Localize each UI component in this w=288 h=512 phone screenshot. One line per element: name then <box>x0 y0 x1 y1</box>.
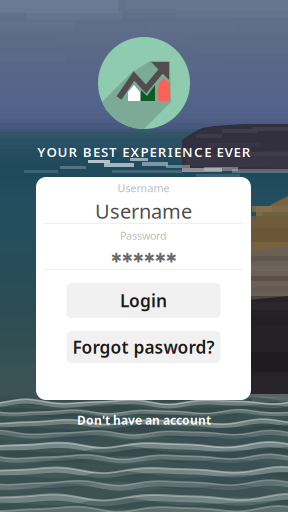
button[interactable]: Forgot pasword? <box>66 331 220 363</box>
button[interactable]: Login <box>66 283 220 318</box>
staticText: Username <box>95 198 192 224</box>
staticText: YOUR BEST EXPERIENCE EVER <box>37 143 251 161</box>
staticText: ✱✱✱✱✱✱ <box>110 250 176 265</box>
staticText: Forgot pasword? <box>72 335 214 358</box>
staticText: Password <box>120 228 167 243</box>
staticText: Login <box>120 289 167 312</box>
staticText: Don't have an account <box>77 412 211 428</box>
staticText: Username <box>117 181 169 195</box>
button[interactable]: Don't have an account <box>0 412 288 428</box>
